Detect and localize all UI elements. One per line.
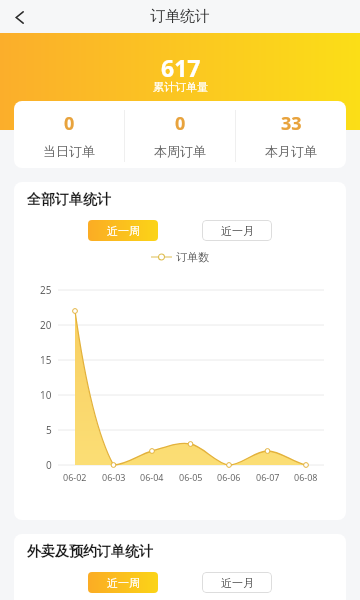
staticText: 06-03	[102, 471, 126, 483]
staticText: 本周订单	[154, 143, 206, 159]
staticText: 全部订单统计	[27, 191, 111, 209]
staticText: 0	[175, 111, 186, 136]
button[interactable]: 近一周	[88, 220, 158, 241]
staticText: 15	[40, 353, 52, 367]
staticText: 近一月	[221, 576, 254, 590]
staticText: 近一周	[107, 224, 140, 238]
staticText: 0	[46, 458, 52, 472]
staticText: 06-07	[256, 471, 280, 483]
staticText: 累计订单量	[153, 80, 208, 94]
staticText: 0	[64, 111, 75, 136]
staticText: 33	[281, 111, 302, 136]
staticText: 617	[161, 52, 201, 83]
staticText: 06-08	[294, 471, 318, 483]
button[interactable]: 0	[125, 101, 235, 168]
staticText: 本月订单	[265, 143, 317, 159]
staticText: 近一周	[107, 576, 140, 590]
button[interactable]: 近一月	[202, 572, 272, 593]
staticText: 5	[46, 423, 52, 437]
staticText: 25	[40, 283, 52, 297]
staticText: 外卖及预约订单统计	[27, 543, 153, 561]
staticText: 订单统计	[150, 7, 210, 26]
button[interactable]: Back	[4, 2, 34, 32]
staticText: 10	[40, 388, 52, 402]
button[interactable]: 近一月	[202, 220, 272, 241]
staticText: 06-06	[217, 471, 241, 483]
staticText: 20	[40, 318, 52, 332]
staticText: 06-02	[63, 471, 87, 483]
staticText: 06-05	[179, 471, 203, 483]
staticText: 订单数	[176, 250, 209, 264]
staticText: 近一月	[221, 224, 254, 238]
staticText: 当日订单	[43, 143, 95, 159]
staticText: 06-04	[140, 471, 164, 483]
button[interactable]: 0	[14, 101, 124, 168]
button[interactable]: 33	[236, 101, 346, 168]
button[interactable]: 近一周	[88, 572, 158, 593]
